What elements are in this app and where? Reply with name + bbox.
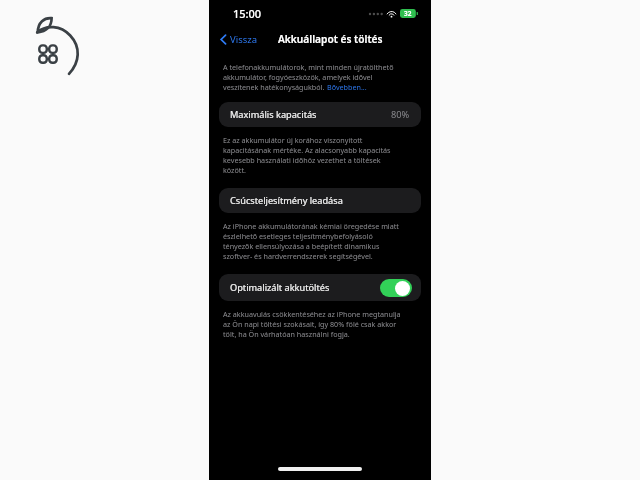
button[interactable]: Bővebben... bbox=[327, 82, 367, 92]
other: Logo bbox=[27, 15, 87, 79]
staticText: Vissza bbox=[230, 33, 258, 46]
staticText: Csúcsteljesítmény leadása bbox=[230, 194, 343, 207]
staticText: kapacitásának mértéke. Az alacsonyabb ka… bbox=[223, 145, 391, 155]
staticText: Optimalizált akkutöltés bbox=[230, 281, 330, 294]
staticText: A telefonakkumulátorok, mint minden újra… bbox=[223, 62, 394, 72]
button[interactable]: Csúcsteljesítmény leadása bbox=[219, 188, 421, 213]
staticText: Az iPhone akkumulátorának kémiai öregedé… bbox=[223, 221, 399, 231]
staticText: 80% bbox=[391, 108, 410, 121]
button[interactable]: Optimalizált akkutöltés bbox=[219, 274, 421, 301]
staticText: az Ön napi töltési szokásait, így 80% fö… bbox=[223, 319, 397, 329]
staticText: Az akkuavulás csökkentéséhez az iPhone m… bbox=[223, 309, 401, 319]
button[interactable]: Optimalizált akkutöltés kapcsoló bbox=[380, 279, 412, 297]
button[interactable]: Vissza bbox=[217, 31, 261, 48]
staticText: szoftver- és hardverrendszerek segítségé… bbox=[223, 251, 373, 261]
staticText: Akkuállapot és töltés bbox=[278, 32, 383, 46]
staticText: között. bbox=[223, 165, 246, 175]
button[interactable]: Maximális kapacitás bbox=[219, 102, 421, 127]
staticText: Maximális kapacitás bbox=[230, 108, 317, 121]
staticText: tényezők ellensúlyozása a beépített dina… bbox=[223, 241, 380, 251]
staticText: veszítenek hatékonyságukból. bbox=[223, 82, 327, 92]
staticText: 15:00 bbox=[233, 6, 262, 21]
staticText: tölt, ha Ön várhatóan használni fogja. bbox=[223, 329, 350, 339]
staticText: 32 bbox=[404, 9, 412, 18]
staticText: akkumulátor, fogyóeszközök, amelyek időv… bbox=[223, 72, 373, 82]
staticText: kevesebb használati időhöz vezethet a tö… bbox=[223, 155, 381, 165]
staticText: észlelhető esetleges teljesítménybefolyá… bbox=[223, 231, 373, 241]
staticText: Ez az akkumulátor új korához viszonyítot… bbox=[223, 135, 363, 145]
